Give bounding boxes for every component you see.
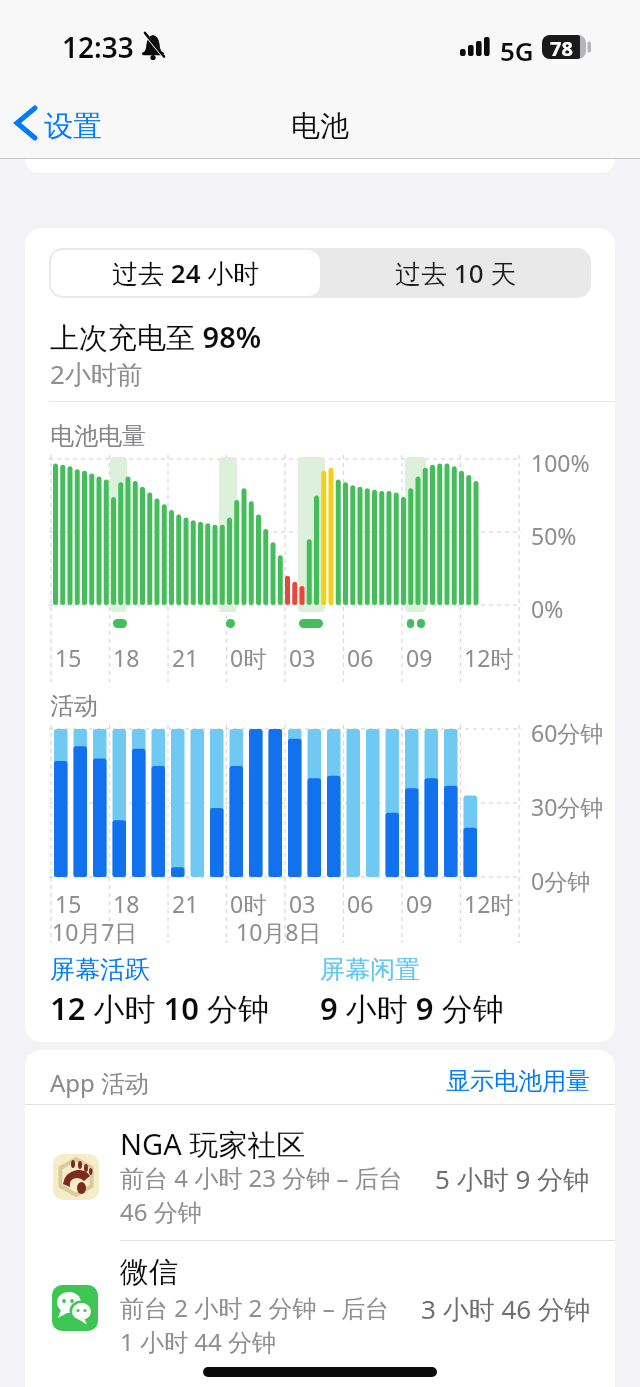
staticText: 12时 (464, 888, 514, 919)
staticText: 03 (289, 642, 316, 673)
staticText: 50% (531, 520, 577, 551)
staticText: 电池 (291, 108, 349, 145)
staticText: 2小时前 (50, 356, 143, 392)
staticText: 09 (406, 642, 433, 673)
staticText: 0分钟 (531, 865, 591, 896)
staticText: 09 (406, 888, 433, 919)
staticText: 21 (172, 888, 199, 919)
staticText: 屏幕闲置 (320, 954, 420, 985)
staticText: 100% (531, 447, 590, 478)
staticText: 前台 2 小时 2 分钟 – 后台 (120, 1291, 389, 1324)
button[interactable] (14, 100, 134, 144)
staticText: 46 分钟 (120, 1195, 202, 1228)
staticText: 上次充电至 98% (50, 317, 262, 357)
staticText: 电池电量 (50, 421, 146, 451)
staticText: 60分钟 (531, 717, 604, 748)
staticText: 12 小时 10 分钟 (50, 987, 270, 1029)
staticText: 3 小时 46 分钟 (421, 1291, 590, 1327)
button[interactable]: 过去 10 天 (322, 250, 589, 296)
staticText: 21 (172, 642, 199, 673)
staticText: NGA 玩家社区 (120, 1124, 306, 1164)
staticText: 0% (531, 593, 564, 624)
staticText: 前台 4 小时 23 分钟 – 后台 (120, 1161, 403, 1194)
staticText: 0时 (230, 888, 267, 919)
staticText: 显示电池用量 (446, 1066, 590, 1096)
staticText: 12时 (464, 642, 514, 673)
button[interactable] (25, 1105, 615, 1240)
staticText: 10月7日 (52, 916, 138, 947)
staticText: 屏幕活跃 (50, 954, 150, 985)
staticText: App 活动 (50, 1066, 150, 1099)
staticText: 15 (55, 888, 82, 919)
staticText: 9 小时 9 分钟 (320, 987, 504, 1029)
staticText: 12:33 (62, 28, 134, 66)
staticText: 03 (289, 888, 316, 919)
staticText: 18 (113, 642, 140, 673)
staticText: 5G (500, 33, 534, 68)
button[interactable]: 过去 24 小时 (51, 250, 320, 296)
staticText: 10月8日 (236, 916, 322, 947)
staticText: 18 (113, 888, 140, 919)
staticText: 06 (347, 642, 374, 673)
button[interactable] (25, 1241, 615, 1376)
staticText: 06 (347, 888, 374, 919)
staticText: 活动 (50, 691, 98, 721)
staticText: 过去 10 天 (395, 255, 517, 291)
staticText: 0时 (230, 642, 267, 673)
staticText: 设置 (44, 108, 102, 145)
staticText: 15 (55, 642, 82, 673)
staticText: 1 小时 44 分钟 (120, 1325, 276, 1358)
staticText: 5 小时 9 分钟 (435, 1161, 590, 1197)
staticText: 过去 24 小时 (112, 255, 260, 291)
button[interactable]: 显示电池用量 (300, 1066, 590, 1096)
staticText: 30分钟 (531, 791, 604, 822)
staticText: 78 (550, 35, 573, 59)
staticText: 微信 (120, 1254, 178, 1291)
